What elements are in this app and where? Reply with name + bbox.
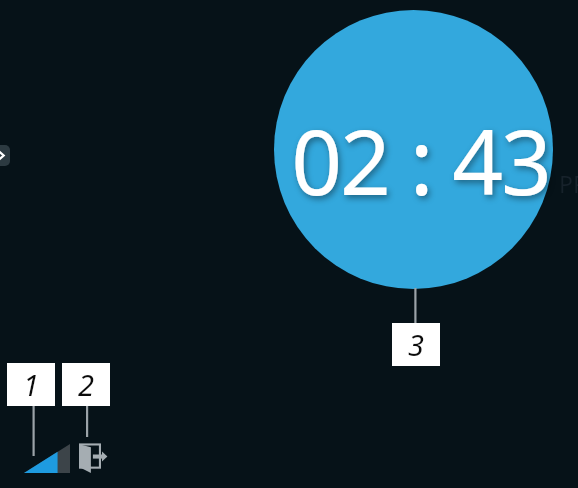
button[interactable]: 3	[392, 323, 440, 366]
staticText: 1	[23, 365, 39, 404]
staticText: 02 : 43	[291, 100, 550, 221]
button[interactable]: Next page	[0, 145, 10, 166]
staticText: 2	[78, 365, 94, 404]
button[interactable]: Countdown timer 02:43	[274, 10, 553, 289]
staticText: 3	[408, 325, 424, 364]
button[interactable]: 2	[62, 363, 110, 406]
staticText: PR	[559, 168, 578, 199]
button[interactable]: Signal strength	[24, 444, 70, 473]
button[interactable]: Exit	[78, 442, 109, 474]
button[interactable]: 1	[7, 363, 55, 406]
